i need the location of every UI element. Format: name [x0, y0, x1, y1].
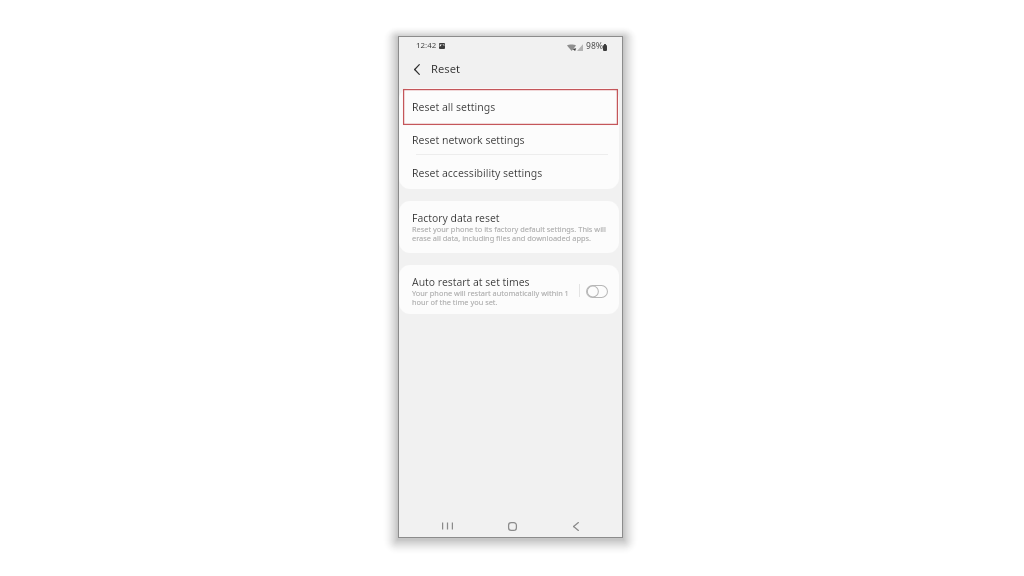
button[interactable]: Recent apps: [428, 515, 466, 537]
button[interactable]: Auto restart at set times: [399, 265, 578, 314]
staticText: Factory data reset: [412, 211, 500, 225]
staticText: Reset all settings: [412, 100, 496, 114]
staticText: 98%: [586, 40, 604, 52]
button[interactable]: Home: [493, 515, 531, 537]
staticText: Reset accessibility settings: [412, 166, 543, 180]
staticText: Reset network settings: [412, 133, 525, 147]
button[interactable]: Navigate up: [407, 54, 427, 84]
button[interactable]: Factory data reset: [399, 201, 619, 253]
button[interactable]: Back: [557, 515, 595, 537]
staticText: Reset your phone to its factory default …: [412, 224, 606, 243]
button[interactable]: Auto restart at set times, off: [586, 285, 608, 298]
button[interactable]: Reset accessibility settings: [399, 154, 619, 187]
staticText: Your phone will restart automatically wi…: [412, 288, 569, 307]
button[interactable]: Reset network settings: [399, 121, 619, 154]
staticText: 12:42: [416, 40, 437, 51]
staticText: Auto restart at set times: [412, 275, 530, 289]
button[interactable]: Reset all settings: [399, 88, 619, 121]
staticText: Reset: [431, 61, 460, 76]
